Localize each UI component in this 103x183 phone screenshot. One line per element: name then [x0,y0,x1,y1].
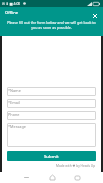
staticText: Phone [8,112,20,117]
button[interactable]: *Name [7,87,96,96]
staticText: *Message [8,124,26,129]
button[interactable]: *Email [7,99,96,108]
staticText: Offline [5,10,18,15]
button[interactable]: Close [90,11,99,20]
button[interactable]: Phone [7,111,96,120]
button[interactable]: Submit [7,151,96,161]
button[interactable]: Recents [15,172,37,183]
button[interactable]: Home [41,172,63,183]
button[interactable]: Back [66,172,88,183]
staticText: ✉ ⬇ ■ 4:00 [2,1,21,6]
staticText: Submit [44,153,59,159]
button[interactable]: *Message [7,123,96,147]
staticText: Made with ♥ by Heads Up [56,164,96,168]
staticText: Please fill out the form below and we wi… [4,20,99,30]
staticText: *Email [8,100,20,105]
staticText: *Name [8,88,21,93]
